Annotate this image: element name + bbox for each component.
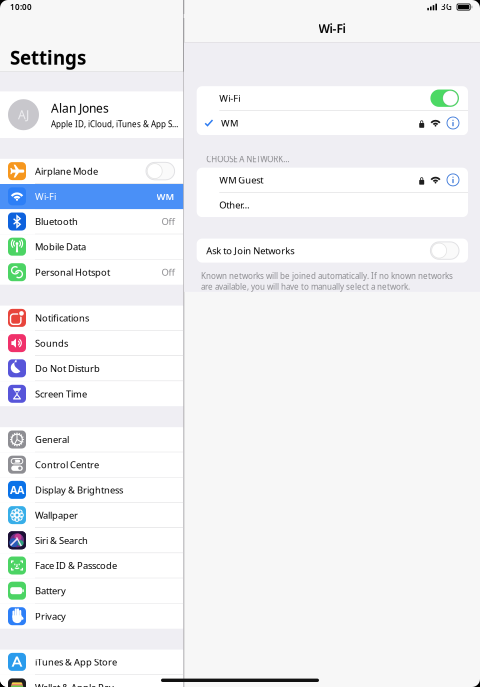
staticText: 3G xyxy=(441,2,452,12)
staticText: Control Centre xyxy=(35,458,99,471)
staticText: Bluetooth xyxy=(35,215,78,228)
staticText: Wallet & Apple Pay xyxy=(35,681,114,687)
button[interactable]: Ask to Join Networks xyxy=(197,239,468,263)
button[interactable]: AA xyxy=(0,478,183,503)
button[interactable]: Siri & Search xyxy=(0,528,183,553)
staticText: Other… xyxy=(219,199,249,211)
staticText: WM Guest xyxy=(219,174,263,186)
staticText: Privacy xyxy=(35,610,66,622)
staticText: WM xyxy=(221,117,238,129)
staticText: AJ xyxy=(18,107,29,123)
button[interactable]: Battery xyxy=(0,578,183,604)
staticText: CHOOSE A NETWORK… xyxy=(206,154,289,164)
staticText: iTunes & App Store xyxy=(35,656,117,668)
button[interactable]: WM Guest xyxy=(197,168,468,192)
button[interactable]: Airplane Mode xyxy=(0,159,183,184)
staticText: Personal Hotspot xyxy=(35,266,110,278)
button[interactable]: Other… xyxy=(197,193,468,217)
staticText: Display & Brightness xyxy=(35,484,123,496)
staticText: Mobile Data xyxy=(35,240,86,253)
staticText: Off xyxy=(162,266,175,278)
button[interactable]: Wi-Fi xyxy=(0,184,183,209)
staticText: Known networks will be joined automatica… xyxy=(201,271,453,292)
button[interactable]: Mobile Data xyxy=(0,234,183,260)
staticText: Ask to Join Networks xyxy=(206,244,294,257)
button[interactable]: Screen Time xyxy=(0,381,183,406)
staticText: 10:00 xyxy=(10,2,32,12)
staticText: Airplane Mode xyxy=(35,165,98,177)
staticText: Apple ID, iCloud, iTunes & App St… xyxy=(51,119,179,129)
staticText: Siri & Search xyxy=(35,534,88,546)
button[interactable]: iTunes & App Store xyxy=(0,650,183,675)
button[interactable]: Personal Hotspot xyxy=(0,260,183,285)
button[interactable]: Privacy xyxy=(0,604,183,629)
staticText: General xyxy=(35,433,69,446)
staticText: Notifications xyxy=(35,312,89,324)
staticText: WM xyxy=(157,190,175,202)
button[interactable]: WM xyxy=(197,111,468,135)
button[interactable]: General xyxy=(0,427,183,452)
staticText: Screen Time xyxy=(35,388,87,400)
button[interactable]: Sounds xyxy=(0,331,183,356)
staticText: Settings xyxy=(10,45,86,70)
staticText: Battery xyxy=(35,584,66,597)
button[interactable]: Notifications xyxy=(0,306,183,331)
button[interactable]: Wi-Fi xyxy=(197,86,468,110)
staticText: Wi-Fi xyxy=(219,92,240,104)
staticText: Wi-Fi xyxy=(35,190,56,202)
staticText: Sounds xyxy=(35,337,68,349)
staticText: AA xyxy=(10,483,24,497)
button[interactable]: AJ xyxy=(0,91,183,138)
button[interactable]: Do Not Disturb xyxy=(0,356,183,381)
staticText: Alan Jones xyxy=(51,100,109,116)
staticText: Wi-Fi xyxy=(318,20,345,36)
button[interactable]: Wallpaper xyxy=(0,503,183,528)
button[interactable]: Wallet & Apple Pay xyxy=(0,675,183,687)
button[interactable]: Face ID & Passcode xyxy=(0,553,183,578)
staticText: Off xyxy=(162,215,175,228)
button[interactable]: Bluetooth xyxy=(0,209,183,234)
staticText: Face ID & Passcode xyxy=(35,559,117,572)
button[interactable]: Control Centre xyxy=(0,452,183,478)
staticText: Wallpaper xyxy=(35,509,78,521)
staticText: Do Not Disturb xyxy=(35,362,100,374)
